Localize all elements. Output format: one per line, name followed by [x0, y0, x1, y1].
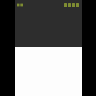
button[interactable]: Battery — [76, 3, 79, 7]
button[interactable]: Network — [72, 3, 75, 7]
button[interactable]: Wi-Fi — [68, 3, 71, 7]
button[interactable]: Clock — [17, 3, 23, 7]
button[interactable]: Signal — [64, 3, 67, 7]
